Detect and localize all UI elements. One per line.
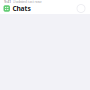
staticText: 9:41 [4, 0, 11, 4]
button[interactable]: Profile [77, 4, 85, 12]
staticText: Chats [12, 4, 30, 13]
staticText: Updated just now [12, 0, 41, 4]
button[interactable]: App icon [3, 5, 10, 12]
